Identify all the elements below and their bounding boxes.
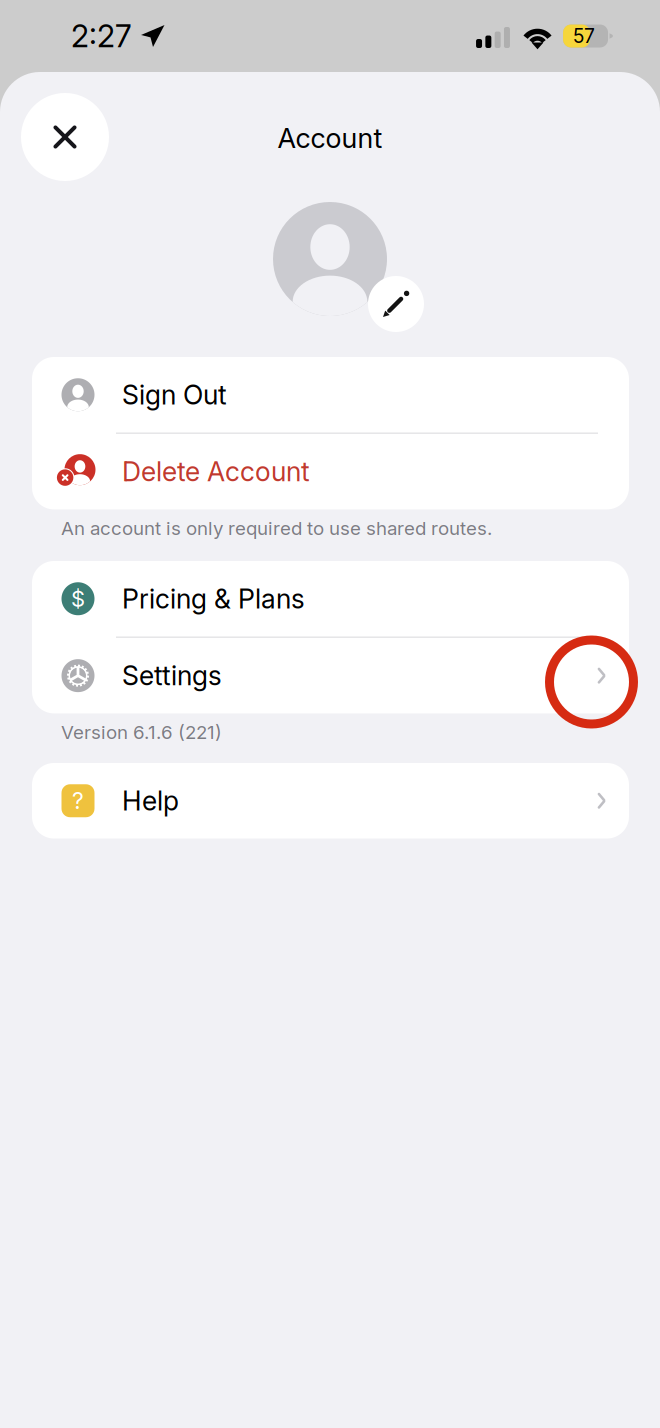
- button[interactable]: ?: [32, 763, 629, 838]
- staticText: Help: [122, 785, 179, 817]
- button[interactable]: Edit profile picture: [368, 276, 424, 332]
- button[interactable]: $: [32, 561, 629, 636]
- button[interactable]: Settings: [32, 638, 629, 713]
- staticText: Version 6.1.6 (221): [61, 721, 222, 744]
- button[interactable]: Close: [21, 93, 109, 181]
- staticText: $: [71, 585, 85, 612]
- staticText: ?: [72, 787, 84, 815]
- staticText: 57: [573, 24, 595, 48]
- staticText: An account is only required to use share…: [61, 517, 492, 540]
- staticText: Account: [277, 121, 382, 155]
- staticText: Sign Out: [122, 379, 227, 411]
- staticText: Settings: [122, 659, 222, 692]
- staticText: Delete Account: [122, 455, 310, 488]
- button[interactable]: Delete Account: [32, 434, 629, 509]
- staticText: Pricing & Plans: [122, 583, 305, 615]
- button[interactable]: Sign Out: [32, 357, 629, 432]
- staticText: 2:27: [71, 17, 132, 54]
